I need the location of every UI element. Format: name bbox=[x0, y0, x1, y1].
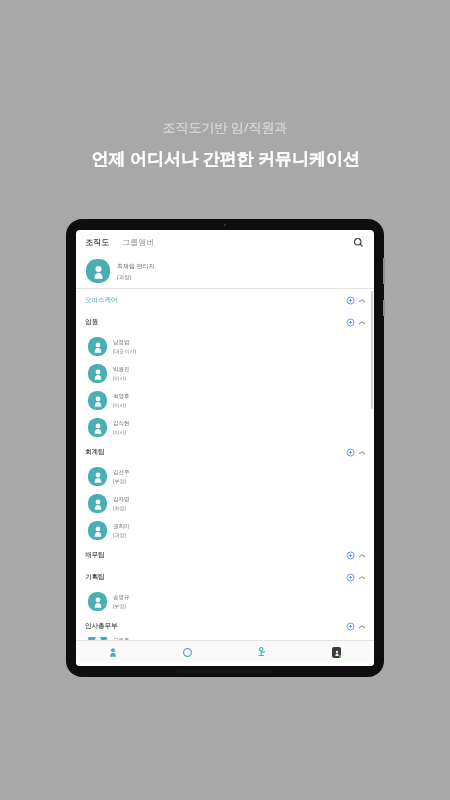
button[interactable]: 재무팀 bbox=[76, 544, 374, 566]
staticText: 김자영 bbox=[113, 496, 130, 503]
staticText: 조직도기반 임/직원과 bbox=[162, 118, 288, 136]
staticText: 권희미 bbox=[113, 523, 130, 530]
staticText: 언제 어디서나 간편한 커뮤니케이션 bbox=[91, 147, 360, 170]
button[interactable]: 오피스케어 bbox=[76, 289, 374, 311]
button[interactable]: 최재림 관리자 bbox=[76, 254, 374, 288]
staticText: (과장) bbox=[113, 532, 127, 539]
button[interactable]: Home bbox=[150, 641, 224, 663]
button[interactable]: 고동호 bbox=[76, 637, 374, 640]
staticText: 그룹멤버 bbox=[122, 237, 154, 247]
button[interactable]: 김선주 bbox=[76, 463, 374, 490]
button[interactable]: 최영후 bbox=[76, 387, 374, 414]
button[interactable]: 임원 bbox=[76, 311, 374, 333]
staticText: 남정엽 bbox=[113, 339, 130, 346]
button[interactable]: 김자영 bbox=[76, 490, 374, 517]
staticText: (차장) bbox=[113, 505, 127, 512]
button[interactable]: Search bbox=[351, 235, 365, 249]
button[interactable]: 회계팀 bbox=[76, 441, 374, 463]
staticText: 오피스케어 bbox=[85, 296, 118, 304]
staticText: 박용진 bbox=[113, 366, 130, 373]
button[interactable]: 인사총무부 bbox=[76, 615, 374, 637]
staticText: 회계팀 bbox=[85, 448, 105, 456]
staticText: 김식현 bbox=[113, 420, 130, 427]
staticText: 최영후 bbox=[113, 393, 130, 400]
staticText: 기획팀 bbox=[85, 573, 105, 581]
staticText: 조직도 bbox=[85, 237, 109, 247]
button[interactable]: 기획팀 bbox=[76, 566, 374, 588]
staticText: 송영규 bbox=[113, 594, 130, 601]
staticText: 재무팀 bbox=[85, 551, 105, 559]
button[interactable]: My profile bbox=[299, 641, 374, 663]
staticText: 고동호 bbox=[113, 637, 130, 640]
staticText: 임원 bbox=[85, 318, 98, 326]
button[interactable]: 권희미 bbox=[76, 517, 374, 544]
button[interactable]: 송영규 bbox=[76, 588, 374, 615]
staticText: (대표이사) bbox=[113, 348, 137, 355]
staticText: (부장) bbox=[113, 603, 127, 610]
button[interactable]: 조직도 bbox=[85, 237, 109, 247]
staticText: 인사총무부 bbox=[85, 622, 118, 630]
button[interactable]: 박용진 bbox=[76, 360, 374, 387]
staticText: (부장) bbox=[113, 478, 127, 485]
button[interactable]: 김식현 bbox=[76, 414, 374, 441]
button[interactable]: Contacts bbox=[224, 641, 299, 663]
staticText: (이사) bbox=[113, 375, 127, 382]
button[interactable]: Organization bbox=[76, 641, 150, 663]
staticText: (과장) bbox=[117, 273, 132, 281]
staticText: (이사) bbox=[113, 402, 127, 409]
button[interactable]: 남정엽 bbox=[76, 333, 374, 360]
button[interactable]: 그룹멤버 bbox=[122, 237, 154, 247]
staticText: 최재림 관리자 bbox=[117, 262, 155, 270]
staticText: (이사) bbox=[113, 429, 127, 436]
staticText: 김선주 bbox=[113, 469, 130, 476]
